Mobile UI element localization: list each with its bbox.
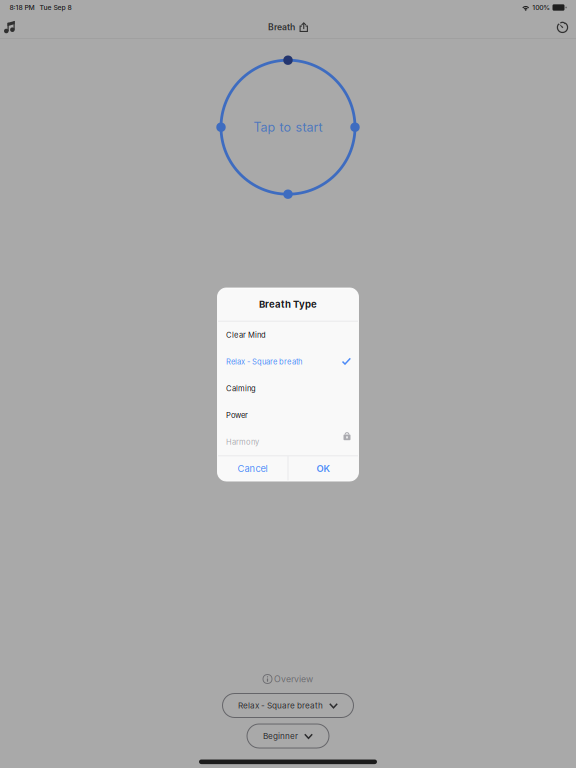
staticText: Relax - Square breath [226, 357, 302, 366]
staticText: Overview [274, 674, 313, 684]
staticText: OK [317, 463, 331, 474]
button[interactable]: Cancel [217, 456, 288, 481]
button[interactable]: Relax - Square breath [222, 693, 353, 717]
staticText: 100% [532, 3, 550, 12]
staticText: Tap to start [253, 120, 322, 135]
staticText: Tue Sep 8 [39, 3, 71, 12]
staticText: Harmony [226, 437, 259, 447]
staticText: Breath [268, 22, 295, 32]
staticText: Calming [226, 384, 256, 393]
staticText: Breath Type [259, 298, 317, 310]
button[interactable]: Harmony [217, 429, 358, 455]
staticText: Beginner [263, 731, 298, 741]
button[interactable]: Overview [260, 672, 316, 686]
staticText: Cancel [237, 463, 267, 474]
button[interactable]: Beginner [247, 724, 329, 748]
staticText: Power [226, 411, 248, 420]
staticText: Relax - Square breath [238, 701, 323, 710]
button[interactable]: Calming [217, 375, 358, 402]
staticText: 8:18 PM [9, 3, 34, 12]
button[interactable]: Clear Mind [217, 321, 358, 348]
button[interactable]: Power [217, 402, 358, 429]
button[interactable]: Relax - Square breath [217, 348, 358, 375]
button[interactable]: Music library [0, 17, 19, 37]
button[interactable]: Session timer [552, 17, 572, 37]
staticText: Clear Mind [226, 330, 266, 339]
button[interactable]: OK [288, 456, 359, 481]
